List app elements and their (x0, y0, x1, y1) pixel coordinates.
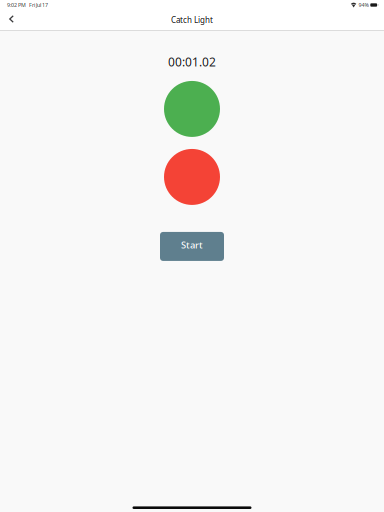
staticText: Start (181, 239, 203, 251)
button[interactable]: Green light (164, 81, 220, 137)
button[interactable]: Red light (164, 149, 220, 205)
button[interactable]: Back (0, 10, 23, 30)
staticText: 00:01.02 (168, 54, 216, 70)
button[interactable]: Start (160, 232, 224, 261)
staticText: Catch Light (171, 15, 213, 25)
staticText: 94% (358, 1, 368, 9)
staticText: 9:02 PM (7, 1, 26, 9)
staticText: Fri Jul 17 (29, 1, 48, 9)
